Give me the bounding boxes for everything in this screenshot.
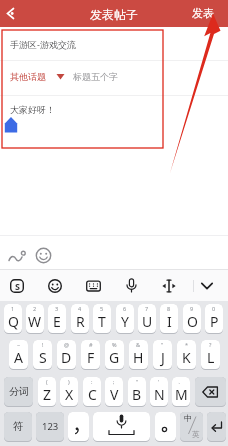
staticText: ( <box>46 378 48 385</box>
button[interactable]: " <box>128 377 146 406</box>
button[interactable] <box>86 279 101 293</box>
button[interactable]: ( <box>38 377 56 406</box>
staticText: 发表 <box>192 6 214 20</box>
staticText: ; <box>113 378 115 385</box>
staticText: D <box>61 348 72 367</box>
staticText: M <box>175 385 188 404</box>
button[interactable] <box>48 279 62 293</box>
staticText: G <box>109 348 120 367</box>
button[interactable]: 123 <box>36 412 64 441</box>
button[interactable]: 0 <box>205 304 223 333</box>
button[interactable]: ; <box>105 377 123 406</box>
button[interactable]: 其他话题 <box>10 66 58 86</box>
button[interactable]: 8 <box>160 304 178 333</box>
staticText: W <box>28 312 42 331</box>
staticText: Y <box>121 312 129 331</box>
button[interactable]: 7 <box>138 304 156 333</box>
button[interactable]: @ <box>57 340 76 369</box>
staticText: " <box>136 378 139 385</box>
staticText: V <box>110 385 119 404</box>
button[interactable] <box>200 279 214 293</box>
button[interactable] <box>68 412 89 441</box>
staticText: I <box>167 312 172 331</box>
button[interactable]: 3 <box>48 304 66 333</box>
button[interactable]: % <box>105 340 124 369</box>
staticText: S <box>39 348 47 367</box>
staticText: S <box>15 280 20 292</box>
button[interactable] <box>125 278 138 294</box>
staticText: 8 <box>167 305 171 312</box>
button[interactable] <box>161 279 177 293</box>
staticText: @ <box>64 341 69 348</box>
staticText: 发表帖子 <box>90 7 138 21</box>
button[interactable]: 中 <box>180 412 203 441</box>
button[interactable]: S <box>10 279 24 293</box>
staticText: 5 <box>100 305 104 312</box>
button[interactable] <box>2 4 20 23</box>
staticText: R <box>76 312 85 331</box>
staticText: E <box>53 312 61 331</box>
staticText: L <box>207 348 215 367</box>
staticText: * <box>185 341 189 348</box>
staticText: 0 <box>212 305 216 312</box>
staticText: 6 <box>123 305 127 312</box>
staticText: 其他话题 <box>10 71 46 82</box>
staticText: & <box>136 341 141 348</box>
staticText: # <box>89 341 93 348</box>
button[interactable]: 2 <box>26 304 44 333</box>
staticText: ' <box>158 378 160 385</box>
button[interactable] <box>7 248 28 266</box>
staticText: ! <box>42 341 44 348</box>
staticText: 标题五个字 <box>73 71 118 82</box>
staticText: 2 <box>33 305 37 312</box>
button[interactable]: * <box>177 340 196 369</box>
button[interactable]: # <box>81 340 100 369</box>
staticText: ? <box>209 341 212 348</box>
button[interactable]: 、 <box>172 377 190 406</box>
staticText: 符 <box>13 420 24 433</box>
button[interactable] <box>155 412 176 441</box>
button[interactable]: & <box>129 340 148 369</box>
staticText: Q <box>8 312 19 331</box>
button[interactable]: 9 <box>183 304 201 333</box>
button[interactable]: ? <box>201 340 220 369</box>
staticText: H <box>133 348 144 367</box>
button[interactable] <box>93 412 150 441</box>
button[interactable]: : <box>83 377 101 406</box>
button[interactable]: 分词 <box>4 377 33 406</box>
button[interactable]: ) <box>60 377 78 406</box>
button[interactable]: ! <box>33 340 52 369</box>
button[interactable]: " <box>153 340 172 369</box>
staticText: 123 <box>42 420 59 433</box>
button[interactable]: 4 <box>71 304 89 333</box>
button[interactable]: 发表 <box>186 6 220 20</box>
button[interactable]: 6 <box>116 304 134 333</box>
staticText: X <box>65 385 74 404</box>
button[interactable]: 1 <box>4 304 22 333</box>
staticText: 、 <box>178 378 184 385</box>
staticText: A <box>14 348 23 367</box>
button[interactable]: 大家好呀！ <box>10 99 90 119</box>
staticText: 中 <box>184 413 192 423</box>
staticText: P <box>210 312 219 331</box>
button[interactable] <box>195 377 226 406</box>
staticText: 3 <box>55 305 59 312</box>
staticText: 手游区-游戏交流 <box>10 38 76 50</box>
button[interactable]: 手游区-游戏交流 <box>10 33 120 55</box>
staticText: T <box>98 312 106 331</box>
staticText: 7 <box>145 305 149 312</box>
staticText: J <box>161 348 165 367</box>
button[interactable] <box>35 247 52 264</box>
staticText: 1 <box>11 305 15 312</box>
staticText: C <box>88 385 97 404</box>
button[interactable]: ' <box>150 377 168 406</box>
staticText: : <box>91 378 93 385</box>
button[interactable]: ~ <box>9 340 28 369</box>
staticText: N <box>154 385 165 404</box>
button[interactable]: 5 <box>93 304 111 333</box>
button[interactable]: 符 <box>4 412 32 441</box>
staticText: ~ <box>17 341 21 348</box>
staticText: Z <box>43 385 52 404</box>
button[interactable] <box>207 412 226 441</box>
staticText: 大家好呀！ <box>10 104 55 115</box>
